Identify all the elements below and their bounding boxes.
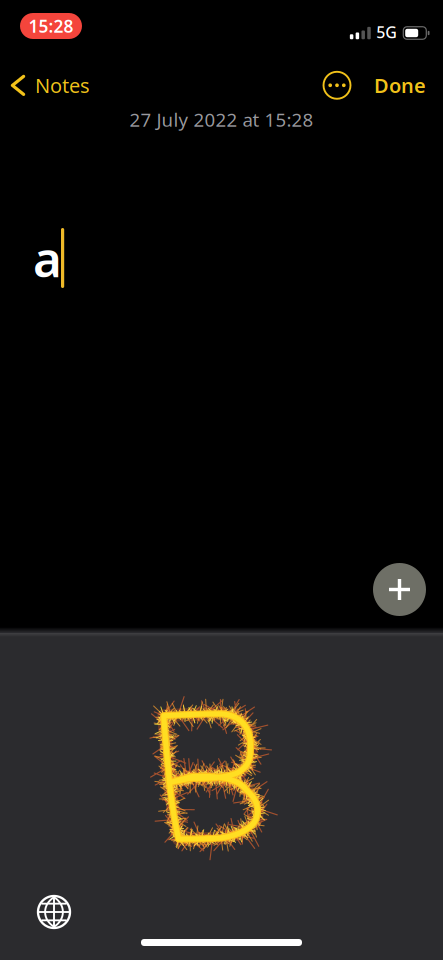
button[interactable]: Add attachment xyxy=(373,563,426,616)
staticText: a xyxy=(33,225,62,291)
staticText: 15:28 xyxy=(28,14,73,37)
staticText: Done xyxy=(374,72,426,99)
button[interactable]: Next keyboard xyxy=(27,885,81,939)
button[interactable]: More xyxy=(315,62,359,108)
staticText: 5G xyxy=(376,21,397,43)
button[interactable]: Notes xyxy=(0,62,102,109)
button[interactable]: Done xyxy=(359,62,443,109)
staticText: 27 July 2022 at 15:28 xyxy=(129,107,313,132)
staticText: Notes xyxy=(35,72,90,99)
